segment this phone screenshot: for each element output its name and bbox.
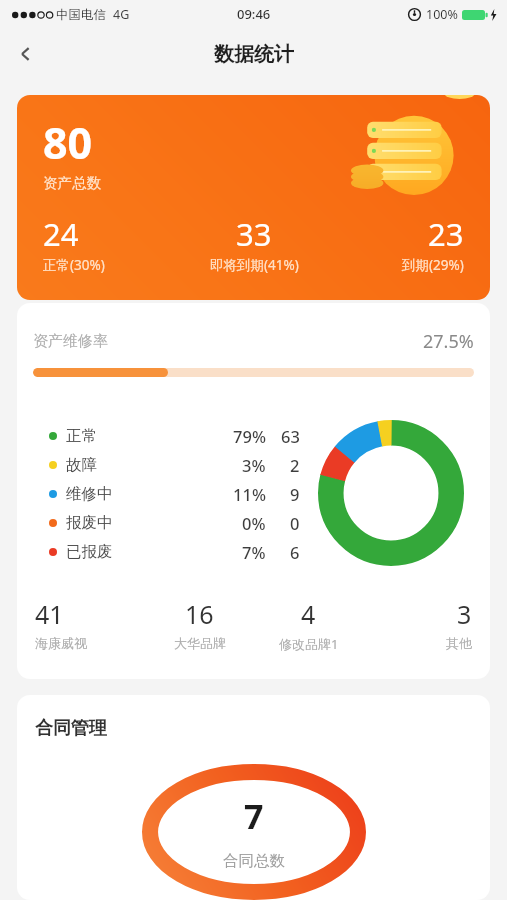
button[interactable]: 3 xyxy=(363,597,472,651)
staticText: 资产总数 xyxy=(43,174,101,192)
button[interactable]: 4 xyxy=(254,597,363,653)
button[interactable]: 故障 xyxy=(31,450,306,479)
staticText: 2 xyxy=(290,454,300,476)
staticText: 正常(30%) xyxy=(43,256,105,274)
staticText: 4 xyxy=(301,597,316,631)
staticText: 79% xyxy=(233,425,266,447)
staticText: 合同管理 xyxy=(35,717,107,740)
button[interactable]: 报废中 xyxy=(31,508,306,537)
staticText: 海康威视 xyxy=(35,635,87,651)
button[interactable]: 80 xyxy=(17,95,490,300)
staticText: 其他 xyxy=(446,635,472,651)
staticText: 7% xyxy=(242,541,266,563)
staticText: 4G xyxy=(113,6,130,23)
staticText: 报废中 xyxy=(66,513,113,533)
staticText: 大华品牌 xyxy=(174,635,226,651)
staticText: 6 xyxy=(290,541,300,563)
staticText: 27.5% xyxy=(423,329,474,354)
button[interactable]: 16 xyxy=(145,597,254,651)
staticText: 23 xyxy=(428,213,464,255)
staticText: 正常 xyxy=(66,426,97,446)
staticText: 已报废 xyxy=(66,542,113,562)
staticText: 到期(29%) xyxy=(402,256,464,274)
button[interactable]: Back xyxy=(0,28,52,80)
staticText: 3 xyxy=(457,597,472,631)
button[interactable]: 维修中 xyxy=(31,479,306,508)
staticText: 0 xyxy=(290,512,300,534)
staticText: 33 xyxy=(236,213,272,255)
staticText: 7 xyxy=(244,793,264,839)
staticText: 41 xyxy=(35,597,64,631)
staticText: 故障 xyxy=(66,455,97,475)
staticText: 数据统计 xyxy=(214,42,294,67)
button[interactable]: 已报废 xyxy=(31,537,306,566)
staticText: 11% xyxy=(233,483,266,505)
staticText: 100% xyxy=(426,6,458,23)
staticText: 63 xyxy=(281,425,300,447)
staticText: 资产维修率 xyxy=(33,332,108,351)
staticText: 9 xyxy=(290,483,300,505)
staticText: 24 xyxy=(43,213,79,255)
staticText: 维修中 xyxy=(66,484,113,504)
staticText: 09:46 xyxy=(237,5,271,23)
staticText: 80 xyxy=(43,113,93,172)
staticText: 3% xyxy=(242,454,266,476)
staticText: 16 xyxy=(185,597,214,631)
staticText: 中国电信 xyxy=(56,7,106,23)
staticText: 合同总数 xyxy=(223,851,285,871)
button[interactable]: 41 xyxy=(35,597,145,651)
staticText: 修改品牌1 xyxy=(279,635,339,653)
staticText: 即将到期(41%) xyxy=(210,256,299,274)
button[interactable]: 正常 xyxy=(31,421,306,450)
staticText: 0% xyxy=(242,512,266,534)
